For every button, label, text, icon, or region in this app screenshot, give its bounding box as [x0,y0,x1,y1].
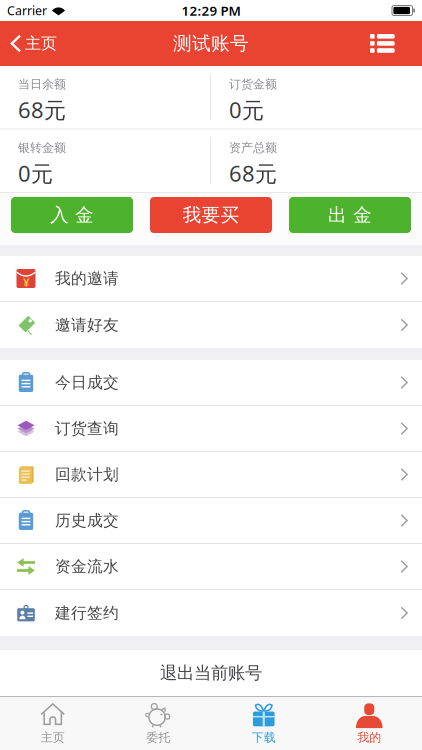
staticText: 我的 [357,730,381,745]
button[interactable]: 回款计划 [0,452,422,497]
button[interactable]: 主页 [0,697,105,750]
staticText: 主页 [41,730,65,745]
staticText: 资产总额 [229,140,277,155]
button[interactable]: 建行签约 [0,590,422,636]
button[interactable]: 今日成交 [0,360,422,405]
button[interactable]: 我要买 [150,197,272,233]
staticText: 回款计划 [55,465,119,484]
staticText: 退出当前账号 [160,662,262,684]
staticText: 订货金额 [229,77,277,92]
staticText: ¥ [23,274,29,290]
staticText: 12:29 PM [181,1,240,20]
staticText: 今日成交 [55,373,119,392]
staticText: 建行签约 [55,603,119,623]
button[interactable]: Menu [370,21,422,66]
staticText: 历史成交 [55,511,119,530]
staticText: Carrier [7,2,47,19]
staticText: 银转金额 [18,140,66,155]
staticText: 我要买 [182,203,239,227]
button[interactable]: 主页 [0,21,57,66]
staticText: 当日余额 [18,77,66,92]
staticText: 测试账号 [173,32,249,55]
button[interactable]: 委托 [105,697,211,750]
button[interactable]: ¥ [0,256,422,301]
staticText: 68元 [229,158,277,188]
staticText: 下载 [252,730,276,745]
staticText: 资金流水 [55,557,119,576]
button[interactable]: 出 金 [289,197,411,233]
staticText: 68元 [18,95,66,125]
staticText: 邀请好友 [55,315,119,335]
button[interactable]: 订货查询 [0,406,422,451]
staticText: 出 金 [328,203,372,227]
staticText: 订货查询 [55,419,119,438]
button[interactable]: 退出当前账号 [0,650,422,696]
staticText: 委托 [146,730,170,745]
button[interactable]: 历史成交 [0,498,422,543]
staticText: 我的邀请 [55,269,119,288]
button[interactable]: 资金流水 [0,544,422,589]
button[interactable]: 入 金 [11,197,133,233]
staticText: 0元 [18,158,53,188]
staticText: 0元 [229,95,264,125]
staticText: 主页 [25,33,57,54]
button[interactable]: 邀请好友 [0,302,422,348]
button[interactable]: 我的 [316,697,422,750]
button[interactable]: 下载 [211,697,316,750]
staticText: 入 金 [50,203,94,227]
